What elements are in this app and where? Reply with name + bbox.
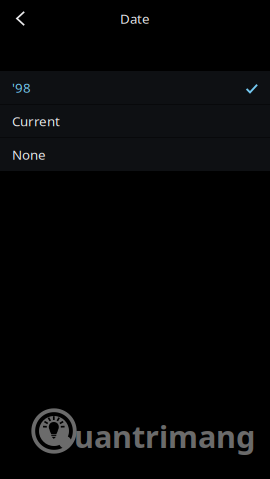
- staticText: uantrimang: [74, 416, 255, 456]
- staticText: Current: [12, 112, 60, 130]
- button[interactable]: '98: [0, 71, 270, 104]
- button[interactable]: Back: [0, 0, 37, 37]
- staticText: None: [12, 146, 46, 163]
- button[interactable]: None: [0, 138, 270, 171]
- staticText: '98: [12, 79, 31, 96]
- staticText: Date: [120, 10, 150, 27]
- button[interactable]: Current: [0, 105, 270, 137]
